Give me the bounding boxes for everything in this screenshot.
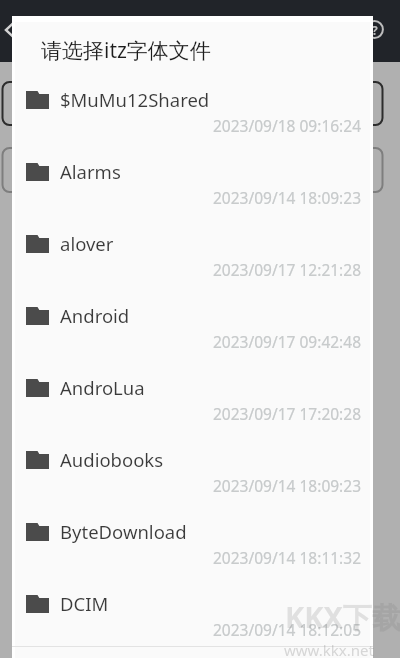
button[interactable]: alover <box>12 223 373 295</box>
staticText: 请选择itz字体文件 <box>41 36 211 65</box>
staticText: 2023/09/14 18:11:32 <box>213 547 361 568</box>
staticText: Audiobooks <box>60 447 164 472</box>
staticText: 2023/09/17 09:42:48 <box>213 331 361 352</box>
staticText: 2023/09/14 18:12:05 <box>213 619 361 640</box>
staticText: $MuMu12Shared <box>60 87 210 112</box>
button[interactable]: Audiobooks <box>12 439 373 511</box>
staticText: AndroLua <box>60 375 145 400</box>
button[interactable]: ByteDownload <box>12 511 373 583</box>
staticText: 2023/09/18 09:16:24 <box>213 115 361 136</box>
button[interactable]: AndroLua <box>12 367 373 439</box>
staticText: Android <box>60 303 130 328</box>
staticText: 2023/09/17 12:21:28 <box>213 259 361 280</box>
button[interactable]: Back <box>0 15 26 45</box>
staticText: 2023/09/17 17:20:28 <box>213 403 361 424</box>
staticText: ? <box>372 22 378 38</box>
staticText: alover <box>60 231 114 256</box>
staticText: www.kkx.net <box>284 640 374 658</box>
button[interactable]: Help <box>365 20 384 39</box>
button[interactable]: $MuMu12Shared <box>12 79 373 151</box>
button[interactable]: Android <box>12 295 373 367</box>
staticText: 2023/09/14 18:09:23 <box>213 187 361 208</box>
staticText: ByteDownload <box>60 519 187 544</box>
staticText: Alarms <box>60 159 121 184</box>
staticText: DCIM <box>60 591 109 616</box>
button[interactable]: DCIM <box>12 583 373 655</box>
staticText: 2023/09/14 18:09:23 <box>213 475 361 496</box>
button[interactable]: Alarms <box>12 151 373 223</box>
staticText: KKX下载 <box>285 597 400 637</box>
